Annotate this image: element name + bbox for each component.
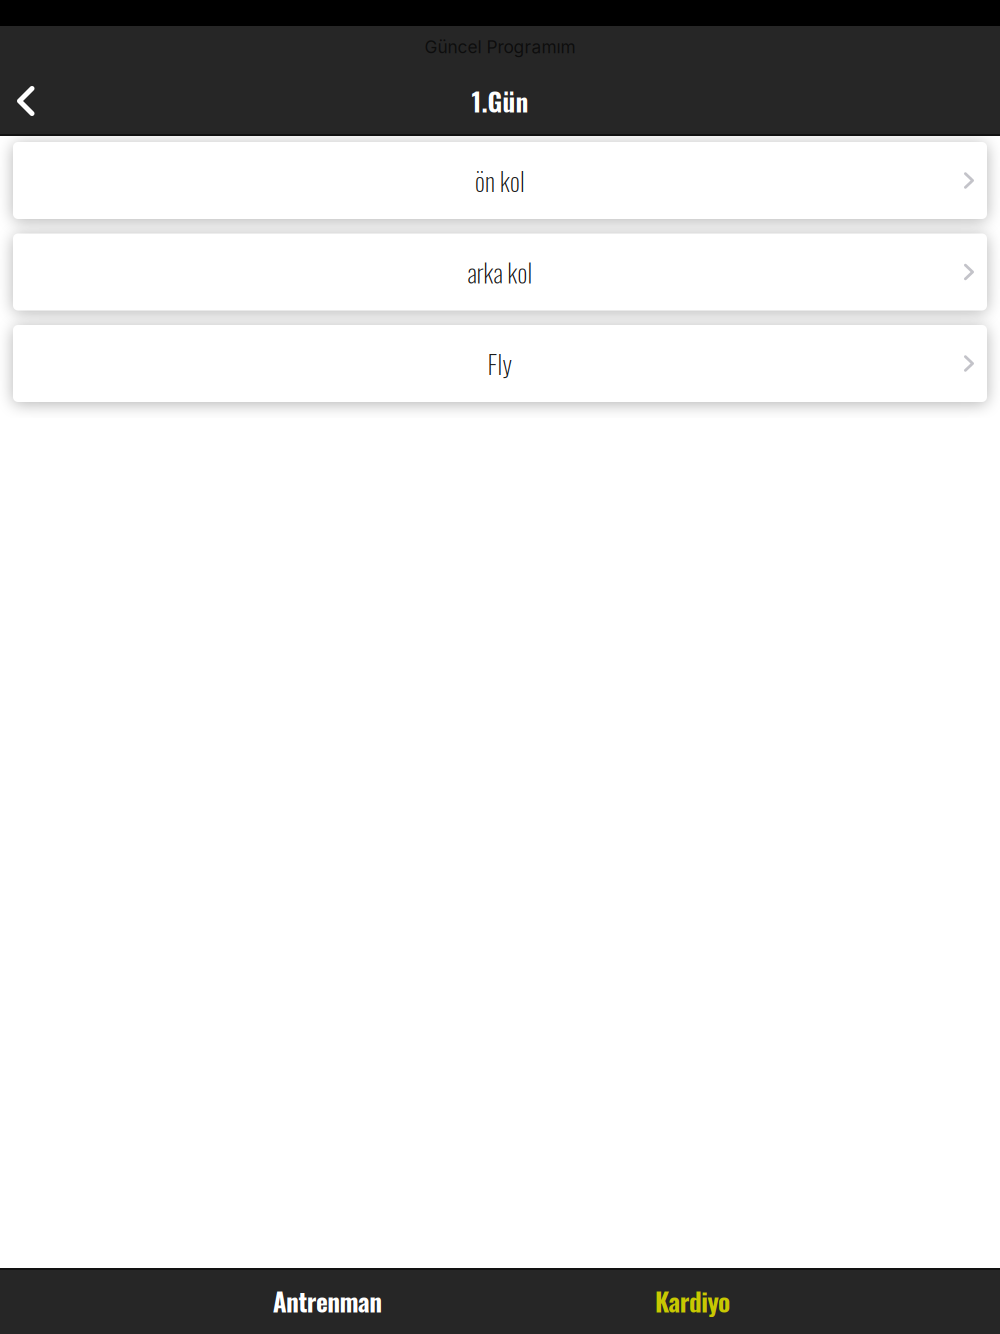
button[interactable]: Back <box>0 73 60 129</box>
button[interactable]: Antrenman <box>145 1269 510 1333</box>
staticText: Antrenman <box>273 1282 382 1320</box>
button[interactable]: ön kol <box>13 142 987 219</box>
button[interactable]: Kardiyo <box>510 1269 875 1333</box>
staticText: 1.Gün <box>471 82 528 120</box>
staticText: Fly <box>487 345 512 382</box>
button[interactable]: Fly <box>13 325 987 402</box>
staticText: ön kol <box>475 162 525 199</box>
staticText: Güncel Programım <box>424 36 575 57</box>
button[interactable]: arka kol <box>13 233 987 310</box>
staticText: Kardiyo <box>655 1282 730 1320</box>
staticText: arka kol <box>467 253 532 291</box>
